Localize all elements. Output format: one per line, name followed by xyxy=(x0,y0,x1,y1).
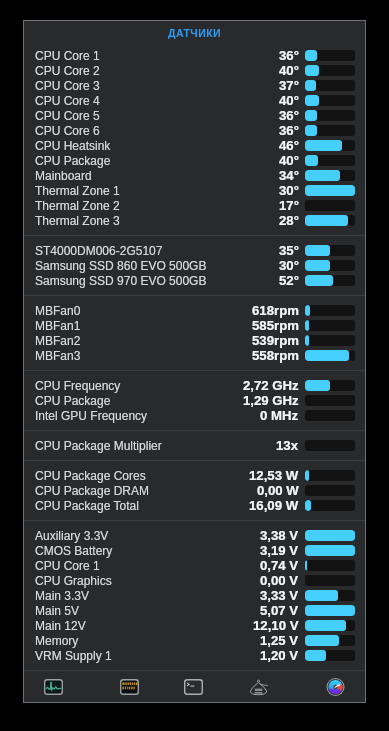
button[interactable]: CPU Core 5 xyxy=(23,108,366,123)
button[interactable]: Samsung SSD 970 EVO 500GB xyxy=(23,273,366,288)
staticText: Main 12V xyxy=(35,619,86,632)
staticText: 3,33 V xyxy=(260,588,299,603)
button[interactable]: Main 12V xyxy=(23,618,366,633)
staticText: 3,38 V xyxy=(260,528,299,543)
staticText: 0,74 V xyxy=(260,558,299,573)
staticText: 17° xyxy=(279,198,299,213)
staticText: Thermal Zone 2 xyxy=(35,199,120,212)
button[interactable]: MBFan1 xyxy=(23,318,366,333)
button[interactable]: CMOS Battery xyxy=(23,543,366,558)
staticText: 1,29 GHz xyxy=(243,393,299,408)
staticText: CPU Package xyxy=(35,394,111,407)
button[interactable]: Main 3.3V xyxy=(23,588,366,603)
staticText: 52° xyxy=(279,273,299,288)
staticText: Main 5V xyxy=(35,604,80,617)
staticText: 40° xyxy=(279,93,299,108)
button[interactable]: CPU Package Cores xyxy=(23,468,366,483)
button[interactable]: CPU Package xyxy=(23,153,366,168)
staticText: CPU Package Total xyxy=(35,499,139,512)
staticText: Samsung SSD 970 EVO 500GB xyxy=(35,274,207,287)
button[interactable]: Thermal Zone 3 xyxy=(23,213,366,228)
staticText: 16,09 W xyxy=(249,498,299,513)
button[interactable]: System monitor xyxy=(322,674,348,699)
button[interactable]: MBFan0 xyxy=(23,303,366,318)
staticText: Intel GPU Frequency xyxy=(35,409,148,422)
staticText: 1,20 V xyxy=(260,648,299,663)
button[interactable]: CPU Core 1 xyxy=(23,48,366,63)
button[interactable]: Thermal Zone 2 xyxy=(23,198,366,213)
button[interactable]: Memory xyxy=(23,633,366,648)
button[interactable]: CPU Graphics xyxy=(23,573,366,588)
staticText: CPU Core 2 xyxy=(35,64,100,77)
button[interactable]: CPU Package DRAM xyxy=(23,483,366,498)
button[interactable]: Terminal xyxy=(180,674,206,699)
button[interactable]: CPU Package xyxy=(23,393,366,408)
staticText: CPU Package Multiplier xyxy=(35,439,162,452)
staticText: ST4000DM006-2G5107 xyxy=(35,244,163,257)
staticText: 585rpm xyxy=(252,318,299,333)
staticText: CPU Graphics xyxy=(35,574,112,587)
staticText: CPU Package Cores xyxy=(35,469,146,482)
staticText: CPU Core 1 xyxy=(35,559,100,572)
staticText: 1,25 V xyxy=(260,633,299,648)
button[interactable]: ST4000DM006-2G5107 xyxy=(23,243,366,258)
staticText: Thermal Zone 3 xyxy=(35,214,120,227)
staticText: Auxiliary 3.3V xyxy=(35,529,109,542)
staticText: 36° xyxy=(279,108,299,123)
button[interactable]: MBFan2 xyxy=(23,333,366,348)
staticText: 0,00 V xyxy=(260,573,299,588)
staticText: CMOS Battery xyxy=(35,544,113,557)
staticText: 35° xyxy=(279,243,299,258)
button[interactable]: CPU Core 2 xyxy=(23,63,366,78)
button[interactable]: Warnings log xyxy=(116,674,142,699)
staticText: Samsung SSD 860 EVO 500GB xyxy=(35,259,207,272)
staticText: 40° xyxy=(279,63,299,78)
staticText: CPU Core 4 xyxy=(35,94,100,107)
staticText: CPU Core 5 xyxy=(35,109,100,122)
button[interactable]: Activity Monitor xyxy=(40,674,66,699)
staticText: MBFan3 xyxy=(35,349,81,362)
staticText: Memory xyxy=(35,634,79,647)
staticText: 558rpm xyxy=(252,348,299,363)
button[interactable]: Auxiliary 3.3V xyxy=(23,528,366,543)
button[interactable]: VRM Supply 1 xyxy=(23,648,366,663)
staticText: 28° xyxy=(279,213,299,228)
staticText: Mainboard xyxy=(35,169,92,182)
staticText: Main 3.3V xyxy=(35,589,90,602)
button[interactable]: Mainboard xyxy=(23,168,366,183)
staticText: 46° xyxy=(279,138,299,153)
staticText: 5,07 V xyxy=(260,603,299,618)
button[interactable]: CPU Core 3 xyxy=(23,78,366,93)
button[interactable]: Samsung SSD 860 EVO 500GB xyxy=(23,258,366,273)
button[interactable]: CPU Core 6 xyxy=(23,123,366,138)
button[interactable]: CPU Package Multiplier xyxy=(23,438,366,453)
staticText: CPU Package xyxy=(35,154,111,167)
button[interactable]: Thermal Zone 1 xyxy=(23,183,366,198)
staticText: 3,19 V xyxy=(260,543,299,558)
staticText: 0 MHz xyxy=(260,408,299,423)
button[interactable]: CPU Heatsink xyxy=(23,138,366,153)
staticText: MBFan1 xyxy=(35,319,81,332)
staticText: 13x xyxy=(276,438,299,453)
button[interactable]: CPU Core 4 xyxy=(23,93,366,108)
staticText: CPU Package DRAM xyxy=(35,484,150,497)
staticText: 0,00 W xyxy=(257,483,299,498)
staticText: CPU Core 6 xyxy=(35,124,100,137)
button[interactable]: Main 5V xyxy=(23,603,366,618)
button[interactable]: CPU Core 1 xyxy=(23,558,366,573)
staticText: MBFan0 xyxy=(35,304,81,317)
staticText: 12,53 W xyxy=(249,468,299,483)
staticText: VRM Supply 1 xyxy=(35,649,112,662)
button[interactable]: MBFan3 xyxy=(23,348,366,363)
button[interactable]: Intel GPU Frequency xyxy=(23,408,366,423)
staticText: CPU Core 3 xyxy=(35,79,100,92)
staticText: 30° xyxy=(279,258,299,273)
button[interactable]: Network xyxy=(245,674,271,699)
staticText: 40° xyxy=(279,153,299,168)
button[interactable]: CPU Frequency xyxy=(23,378,366,393)
staticText: CPU Heatsink xyxy=(35,139,111,152)
button[interactable]: CPU Package Total xyxy=(23,498,366,513)
staticText: 34° xyxy=(279,168,299,183)
staticText: 12,10 V xyxy=(253,618,299,633)
staticText: MBFan2 xyxy=(35,334,81,347)
